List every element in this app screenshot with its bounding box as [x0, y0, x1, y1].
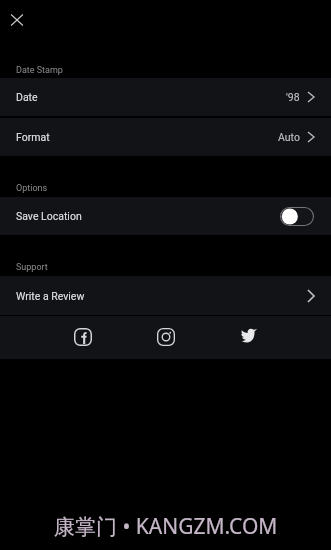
staticText: Auto: [278, 131, 300, 143]
staticText: '98: [286, 91, 300, 103]
staticText: Save Location: [16, 210, 82, 222]
staticText: Write a Review: [16, 290, 85, 302]
staticText: Date: [16, 91, 38, 103]
button[interactable]: Save Location: [0, 197, 331, 235]
staticText: Support: [16, 262, 48, 273]
staticText: 康掌门 • KANGZM.COM: [54, 512, 278, 541]
staticText: Options: [16, 183, 48, 194]
button[interactable]: Format: [0, 118, 331, 156]
button[interactable]: Twitter: [236, 325, 262, 351]
button[interactable]: Facebook: [70, 325, 96, 351]
button[interactable]: Write a Review: [0, 276, 331, 315]
button[interactable]: Date: [0, 78, 331, 116]
button[interactable]: Instagram: [153, 325, 179, 351]
staticText: Format: [16, 131, 50, 143]
button[interactable]: Close: [5, 8, 29, 32]
staticText: Date Stamp: [16, 65, 63, 76]
